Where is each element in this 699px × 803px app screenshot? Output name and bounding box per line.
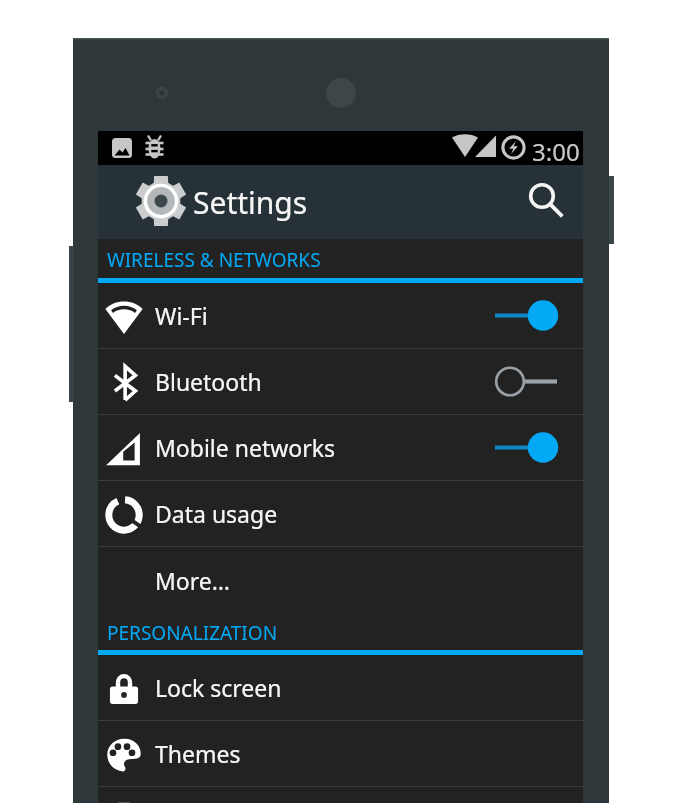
button[interactable]: Wi-Fi [98,283,583,348]
staticText: More… [155,565,230,596]
button[interactable]: Mobile networks [98,415,583,480]
staticText: PERSONALIZATION [107,620,278,646]
staticText: Settings [193,182,308,223]
staticText: Bluetooth [155,366,262,397]
button[interactable]: Bluetooth [98,349,583,414]
staticText: WIRELESS & NETWORKS [107,247,321,273]
staticText: Data usage [155,498,278,529]
button[interactable]: Search [514,168,580,234]
staticText: Lock screen [155,672,282,703]
staticText: Wi-Fi [155,300,208,331]
staticText: 3:00 [532,135,580,168]
button[interactable]: Themes [98,721,583,786]
staticText: Themes [155,738,241,769]
staticText: Mobile networks [155,432,336,463]
button[interactable]: Lock screen [98,655,583,720]
button[interactable]: Data usage [98,481,583,546]
button[interactable]: More… [98,547,583,613]
